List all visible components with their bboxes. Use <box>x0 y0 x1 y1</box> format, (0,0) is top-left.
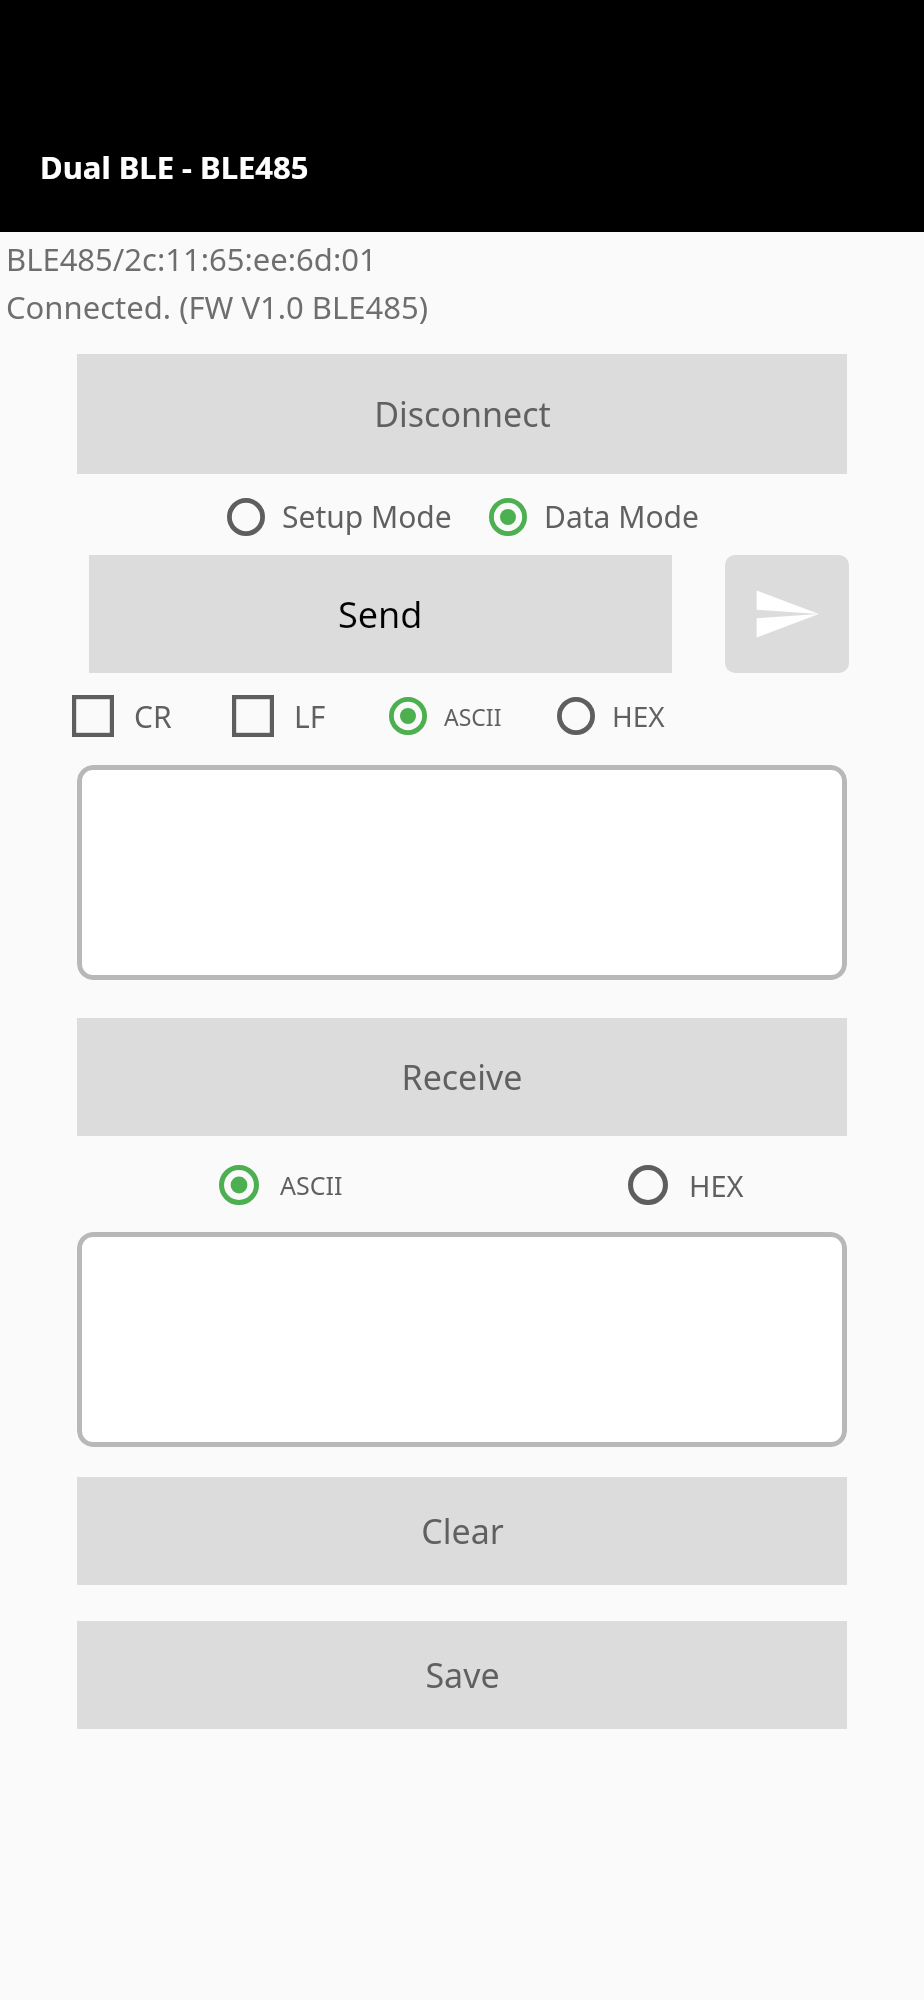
staticText: HEX <box>689 1166 744 1205</box>
button[interactable]: ASCII <box>388 696 502 736</box>
button[interactable]: Data Mode <box>488 496 699 537</box>
staticText: ASCII <box>280 1168 343 1202</box>
staticText: CR <box>134 696 172 737</box>
staticText: Connected. (FW V1.0 BLE485) <box>6 286 428 328</box>
button[interactable]: Receive <box>77 1018 847 1136</box>
button[interactable]: Send <box>89 555 672 673</box>
button[interactable] <box>77 765 847 980</box>
button[interactable] <box>77 1232 847 1447</box>
button[interactable]: Setup Mode <box>226 496 452 537</box>
button[interactable]: Clear <box>77 1477 847 1585</box>
button[interactable]: LF <box>232 695 326 737</box>
staticText: HEX <box>612 697 665 735</box>
staticText: Send <box>338 590 423 639</box>
staticText: Disconnect <box>374 391 551 437</box>
staticText: BLE485/2c:11:65:ee:6d:01 <box>6 238 377 280</box>
button[interactable]: ASCII <box>218 1164 343 1206</box>
staticText: ASCII <box>444 701 502 732</box>
staticText: LF <box>294 696 326 737</box>
staticText: Save <box>425 1652 500 1698</box>
button[interactable]: Send message <box>725 555 849 673</box>
staticText: Setup Mode <box>282 496 452 537</box>
staticText: Data Mode <box>544 496 699 537</box>
staticText: Clear <box>421 1508 504 1554</box>
button[interactable]: HEX <box>556 696 665 736</box>
staticText: Dual BLE - BLE485 <box>40 146 309 188</box>
button[interactable]: Disconnect <box>77 354 847 474</box>
button[interactable]: Save <box>77 1621 847 1729</box>
button[interactable]: HEX <box>627 1164 744 1206</box>
button[interactable]: CR <box>72 695 172 737</box>
staticText: Receive <box>401 1054 523 1100</box>
